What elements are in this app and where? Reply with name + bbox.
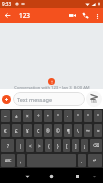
staticText: . <box>81 158 83 164</box>
staticText: ↵ <box>93 158 97 163</box>
staticText: £ <box>15 128 18 134</box>
button[interactable]: ÷ <box>34 110 42 122</box>
staticText: < <box>29 143 32 149</box>
button[interactable]: Video call <box>66 9 79 22</box>
button[interactable]: ± <box>12 110 21 122</box>
staticText: ° <box>87 113 89 119</box>
staticText: Text message <box>17 96 53 103</box>
button[interactable]: } <box>54 139 61 152</box>
button[interactable]: Add attachment <box>2 95 11 104</box>
staticText: ? <box>7 143 9 149</box>
button[interactable]: ~ <box>1 110 10 122</box>
button[interactable]: ° <box>74 110 82 122</box>
button[interactable]: \ <box>74 124 82 137</box>
staticText: ° <box>77 113 79 119</box>
button[interactable]: Back <box>0 8 15 23</box>
button[interactable]: © <box>54 124 62 137</box>
button[interactable]: , <box>17 154 25 167</box>
button[interactable]: { <box>45 139 52 152</box>
button[interactable]: ↵ <box>88 154 102 167</box>
staticText: ] <box>75 143 77 149</box>
button[interactable]: Recents <box>65 170 90 183</box>
button[interactable]: ? <box>1 139 14 152</box>
button[interactable]: More options <box>92 11 102 21</box>
staticText: 123 <box>19 11 30 20</box>
button[interactable]: [ <box>63 139 70 152</box>
staticText: ¡ <box>84 143 86 149</box>
staticText: ~ <box>4 113 7 119</box>
staticText: © <box>56 128 60 134</box>
staticText: ® <box>46 128 50 134</box>
staticText: × <box>26 113 29 119</box>
button[interactable]: Text message <box>13 92 85 106</box>
staticText: | <box>19 143 22 149</box>
staticText: • <box>47 113 49 119</box>
staticText: ¥ <box>26 128 29 134</box>
button[interactable]: ™ <box>84 124 92 137</box>
staticText: ° <box>57 113 59 119</box>
staticText: } <box>57 143 59 149</box>
button[interactable]: € <box>1 124 10 137</box>
button[interactable]: ABC <box>1 154 15 167</box>
staticText: SMS <box>91 100 98 104</box>
staticText: ABC <box>5 158 12 163</box>
button[interactable]: Hide keyboard <box>14 170 40 183</box>
button[interactable]: ] <box>72 139 79 152</box>
button[interactable]: Switch keyboard <box>87 170 101 183</box>
button[interactable]: ¢ <box>34 124 42 137</box>
button[interactable]: ° <box>54 110 62 122</box>
staticText: 9:33 <box>2 1 12 7</box>
staticText: , <box>20 158 22 164</box>
staticText: ¢ <box>37 128 40 134</box>
staticText: ™ <box>86 128 90 134</box>
staticText: ¶ <box>67 128 70 134</box>
staticText: Conversation with 123 • Jan 3, 8:00 AM <box>14 85 90 91</box>
button[interactable]: ° <box>84 110 92 122</box>
staticText: € <box>4 128 7 134</box>
staticText: [ <box>66 143 68 149</box>
button[interactable]: ¡ <box>81 139 88 152</box>
button[interactable]: . <box>78 154 86 167</box>
button[interactable]: Call <box>79 9 92 22</box>
button[interactable]: > <box>36 139 43 152</box>
button[interactable]: ¶ <box>64 124 72 137</box>
button[interactable]: • <box>44 110 52 122</box>
staticText: { <box>48 143 50 149</box>
staticText: > <box>38 143 41 149</box>
staticText: \ <box>77 128 79 134</box>
button[interactable]: ⌫ <box>90 139 102 152</box>
button[interactable]: | <box>16 139 24 152</box>
staticText: ¤ <box>97 128 100 134</box>
button[interactable]: · <box>64 110 72 122</box>
button[interactable]: Send SMS <box>86 91 102 107</box>
button[interactable]: Home <box>39 170 64 183</box>
button[interactable]: < <box>26 139 34 152</box>
button[interactable]: ° <box>94 110 102 122</box>
staticText: ⌫ <box>93 143 100 148</box>
staticText: ° <box>97 113 99 119</box>
button[interactable]: ® <box>44 124 52 137</box>
staticText: ÷ <box>37 113 40 119</box>
button[interactable]: £ <box>12 124 21 137</box>
button[interactable]: × <box>23 110 32 122</box>
button[interactable]: ¤ <box>94 124 102 137</box>
button[interactable]: ¥ <box>23 124 32 137</box>
staticText: ± <box>15 113 18 119</box>
staticText: · <box>67 113 69 119</box>
